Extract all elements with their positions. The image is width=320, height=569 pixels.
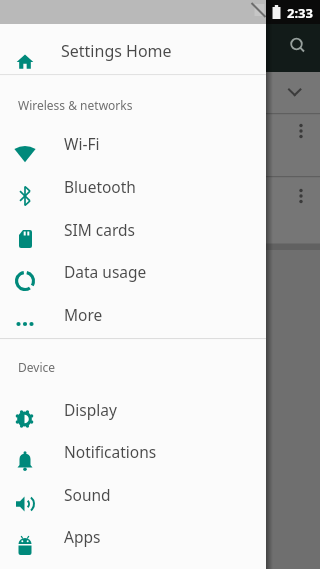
staticText: Bluetooth (64, 176, 136, 197)
staticText: More (64, 304, 103, 325)
staticText: Apps (64, 526, 101, 547)
staticText: Settings Home (61, 40, 172, 62)
staticText: Notifications (64, 441, 157, 462)
button[interactable]: Settings Home (0, 28, 266, 74)
button[interactable]: Wi-Fi (0, 122, 266, 165)
staticText: Display (64, 399, 117, 420)
staticText: Wireless & networks (18, 97, 133, 113)
button[interactable]: Sound (0, 473, 266, 516)
button[interactable]: More (0, 293, 266, 336)
staticText: Data usage (64, 261, 147, 282)
button[interactable]: Bluetooth (0, 165, 266, 208)
button[interactable]: Data usage (0, 250, 266, 293)
button[interactable]: SIM cards (0, 208, 266, 251)
staticText: SIM cards (64, 219, 136, 240)
staticText: 2:33 (287, 4, 313, 22)
staticText: Device (18, 359, 56, 375)
button[interactable]: Apps (0, 515, 266, 558)
button[interactable]: Display (0, 388, 266, 431)
staticText: Wi-Fi (64, 133, 100, 154)
button[interactable]: Notifications (0, 430, 266, 473)
staticText: Sound (64, 484, 111, 505)
